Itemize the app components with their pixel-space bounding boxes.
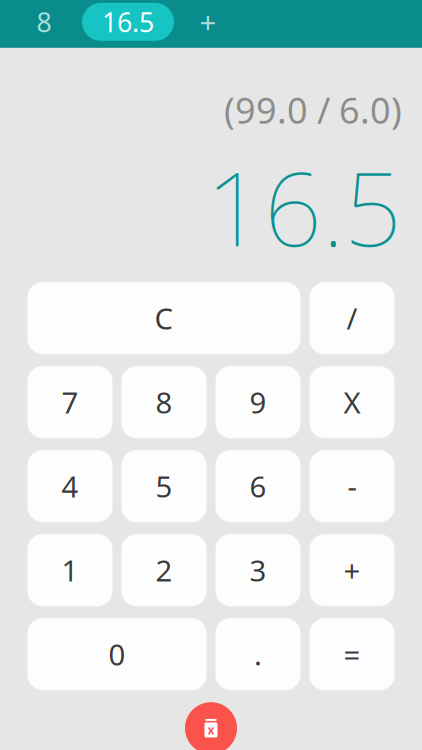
staticText: X [343,383,360,422]
staticText: 2 [155,551,172,590]
button[interactable]: 6 [215,450,300,522]
staticText: = [343,635,360,674]
button[interactable]: X [309,366,394,438]
button[interactable]: / [309,282,394,354]
button[interactable]: 8 [14,3,74,41]
staticText: 5 [155,467,172,506]
button[interactable]: 8 [121,366,206,438]
staticText: / [346,299,357,338]
staticText: 4 [61,467,78,506]
staticText: x [207,722,214,738]
button[interactable]: = [309,618,394,690]
staticText: 16.5 [206,140,402,274]
staticText: C [154,299,173,338]
button[interactable]: 3 [215,534,300,606]
staticText: 0 [108,635,125,674]
staticText: 9 [249,383,266,422]
staticText: 6 [249,467,266,506]
staticText: . [254,635,262,674]
button[interactable]: . [215,618,300,690]
staticText: + [343,551,360,590]
staticText: 8 [155,383,172,422]
button[interactable]: 4 [27,450,112,522]
staticText: + [199,2,216,41]
staticText: - [347,467,356,506]
staticText: 8 [36,4,51,39]
staticText: 1 [61,551,78,590]
staticText: 3 [249,551,266,590]
button[interactable]: 16.5 [82,3,174,41]
staticText: (99.0 / 6.0) [224,86,402,134]
button[interactable]: 9 [215,366,300,438]
button[interactable]: + [309,534,394,606]
button[interactable]: 0 [27,618,206,690]
button[interactable]: Add tab [183,3,233,41]
button[interactable]: 2 [121,534,206,606]
button[interactable]: 5 [121,450,206,522]
button[interactable]: 7 [27,366,112,438]
button[interactable]: - [309,450,394,522]
button[interactable]: 1 [27,534,112,606]
button[interactable]: Delete [185,702,237,750]
staticText: 16.5 [102,4,154,39]
staticText: 7 [61,383,78,422]
button[interactable]: C [27,282,300,354]
